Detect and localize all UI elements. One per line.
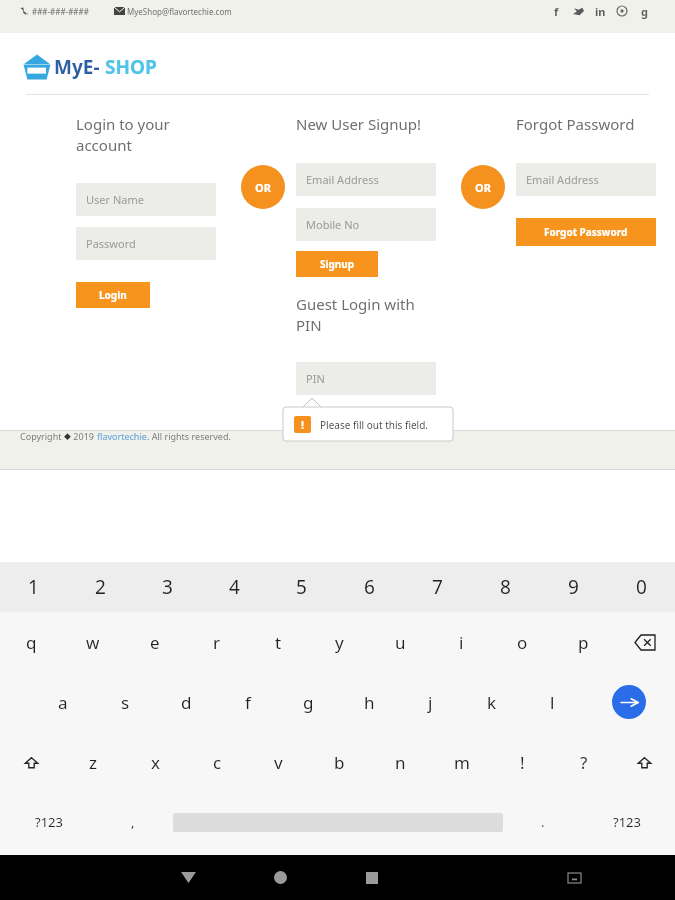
button[interactable]: u: [370, 612, 431, 672]
button[interactable]: Social link t: [567, 0, 589, 22]
button[interactable]: Switch keyboard: [528, 855, 620, 900]
staticText: n: [395, 751, 406, 774]
button[interactable]: Home: [234, 855, 326, 900]
staticText: 4: [229, 574, 240, 600]
button[interactable]: c: [186, 732, 248, 792]
staticText: Email Address: [306, 172, 379, 187]
button[interactable]: Social link g: [633, 0, 655, 22]
button[interactable]: f: [217, 672, 278, 732]
button[interactable]: 4: [201, 562, 268, 612]
button[interactable]: ?123: [579, 792, 675, 852]
button[interactable]: Backspace: [614, 612, 675, 672]
button[interactable]: OR: [461, 165, 505, 209]
staticText: 2019: [71, 430, 97, 442]
staticText: w: [86, 631, 100, 654]
staticText: z: [89, 751, 97, 774]
staticText: j: [428, 691, 433, 714]
button[interactable]: Space: [169, 792, 507, 852]
button[interactable]: o: [492, 612, 553, 672]
staticText: f: [245, 691, 251, 714]
button[interactable]: m: [431, 732, 492, 792]
button[interactable]: Social link f: [545, 0, 567, 22]
button[interactable]: j: [400, 672, 461, 732]
button[interactable]: Login: [76, 282, 150, 308]
button[interactable]: 7: [403, 562, 471, 612]
button[interactable]: z: [62, 732, 124, 792]
staticText: ?123: [613, 813, 641, 831]
button[interactable]: h: [339, 672, 400, 732]
button[interactable]: r: [186, 612, 248, 672]
button[interactable]: g: [278, 672, 339, 732]
button[interactable]: User Name: [76, 183, 216, 216]
staticText: s: [121, 691, 130, 714]
button[interactable]: Email Address: [516, 163, 656, 196]
button[interactable]: Signup: [296, 251, 378, 277]
button[interactable]: i: [431, 612, 492, 672]
button[interactable]: MyE-: [22, 52, 157, 82]
staticText: d: [181, 691, 192, 714]
button[interactable]: ?123: [0, 792, 97, 852]
button[interactable]: b: [309, 732, 370, 792]
button[interactable]: Enter: [583, 672, 675, 732]
button[interactable]: a: [32, 672, 94, 732]
button[interactable]: Password: [76, 227, 216, 260]
staticText: l: [550, 691, 555, 714]
staticText: Email Address: [526, 172, 599, 187]
button[interactable]: e: [124, 612, 186, 672]
button[interactable]: OR: [241, 165, 285, 209]
staticText: 2: [95, 574, 106, 600]
button[interactable]: w: [62, 612, 124, 672]
staticText: 0: [636, 574, 647, 600]
staticText: PIN: [306, 371, 325, 386]
staticText: y: [335, 631, 344, 654]
button[interactable]: Forgot Password: [516, 218, 656, 246]
button[interactable]: Recent apps: [326, 855, 418, 900]
staticText: ?: [580, 751, 588, 774]
button[interactable]: Email Address: [296, 163, 436, 196]
button[interactable]: 6: [335, 562, 403, 612]
button[interactable]: Shift: [0, 732, 62, 792]
button[interactable]: .: [507, 792, 579, 852]
button[interactable]: Shift: [614, 732, 675, 792]
button[interactable]: PIN: [296, 362, 436, 395]
button[interactable]: y: [309, 612, 370, 672]
button[interactable]: v: [248, 732, 309, 792]
button[interactable]: s: [94, 672, 156, 732]
button[interactable]: 3: [134, 562, 201, 612]
staticText: Forgot Password: [516, 114, 635, 134]
button[interactable]: Social link in: [589, 0, 611, 22]
button[interactable]: !: [283, 407, 453, 441]
button[interactable]: k: [461, 672, 522, 732]
button[interactable]: 1: [0, 562, 67, 612]
button[interactable]: 5: [268, 562, 335, 612]
staticText: Login: [99, 288, 127, 302]
button[interactable]: p: [553, 612, 614, 672]
button[interactable]: Social link d: [611, 0, 633, 22]
button[interactable]: Mobile No: [296, 208, 436, 241]
staticText: . All rights reserved.: [147, 430, 231, 442]
button[interactable]: t: [248, 612, 309, 672]
staticText: 7: [432, 574, 443, 600]
button[interactable]: x: [124, 732, 186, 792]
staticText: 8: [500, 574, 511, 600]
staticText: OR: [255, 180, 271, 195]
button[interactable]: d: [156, 672, 217, 732]
button[interactable]: 9: [539, 562, 607, 612]
staticText: !: [301, 417, 305, 432]
button[interactable]: l: [522, 672, 583, 732]
staticText: Guest Login with PIN: [296, 294, 415, 336]
button[interactable]: Back: [142, 855, 234, 900]
staticText: Forgot Password: [544, 225, 628, 239]
staticText: Mobile No: [306, 217, 360, 232]
button[interactable]: 0: [607, 562, 675, 612]
button[interactable]: ,: [97, 792, 169, 852]
staticText: o: [517, 631, 528, 654]
button[interactable]: 8: [471, 562, 539, 612]
button[interactable]: ?: [553, 732, 614, 792]
button[interactable]: q: [0, 612, 62, 672]
staticText: OR: [475, 180, 491, 195]
button[interactable]: 2: [67, 562, 134, 612]
button[interactable]: flavortechie: [97, 430, 147, 442]
button[interactable]: !: [492, 732, 553, 792]
button[interactable]: n: [370, 732, 431, 792]
